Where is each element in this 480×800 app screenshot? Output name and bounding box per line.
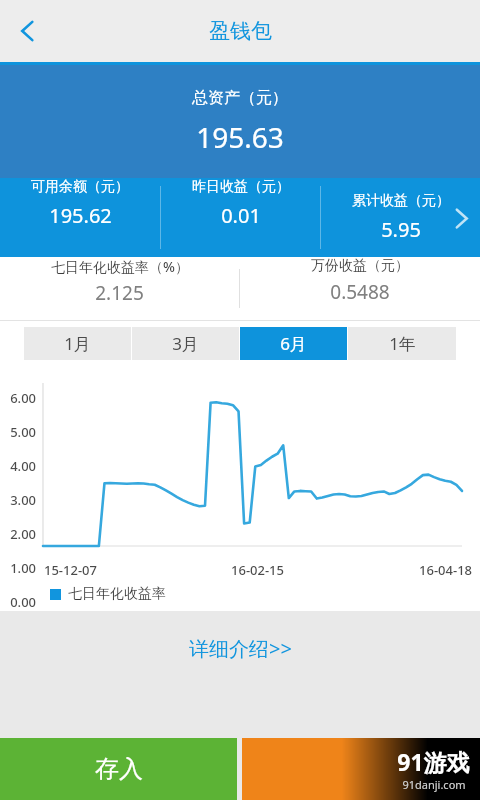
staticText: 可用余额（元） [31, 178, 129, 196]
staticText: 1.00 [0, 559, 36, 577]
button[interactable]: 6月 [240, 327, 347, 360]
staticText: 3.00 [0, 491, 36, 509]
button[interactable]: 可用余额（元） [0, 178, 480, 257]
staticText: 存入 [95, 754, 143, 784]
staticText: 16-02-15 [186, 561, 329, 579]
staticText: 详细介绍>> [189, 635, 292, 662]
staticText: 195.62 [49, 202, 112, 229]
button[interactable]: Back [0, 3, 56, 59]
staticText: 总资产（元） [192, 88, 288, 108]
staticText: 盈钱包 [209, 18, 272, 44]
staticText: 195.63 [196, 118, 284, 156]
button[interactable]: 3月 [132, 327, 239, 360]
staticText: 万份收益（元） [311, 257, 409, 275]
staticText: 2.125 [95, 280, 144, 306]
staticText: 七日年化收益率（%） [51, 257, 189, 276]
staticText: 5.00 [0, 423, 36, 441]
staticText: 16-04-18 [329, 561, 472, 579]
staticText: 七日年化收益率 [68, 585, 166, 603]
button[interactable]: 91游戏 [242, 738, 480, 800]
staticText: 0.5488 [330, 279, 390, 305]
staticText: 6月 [280, 332, 307, 355]
staticText: 15-12-07 [44, 561, 186, 579]
staticText: 91游戏 [397, 746, 470, 777]
staticText: 0.01 [221, 202, 261, 229]
staticText: 累计收益（元） [352, 192, 450, 210]
staticText: 0.00 [0, 593, 36, 611]
button[interactable]: 1月 [24, 327, 131, 360]
staticText: 2.00 [0, 525, 36, 543]
staticText: 1年 [389, 332, 416, 355]
staticText: 4.00 [0, 457, 36, 475]
button[interactable]: 详细介绍>> [175, 629, 306, 668]
button[interactable]: 存入 [0, 738, 237, 800]
staticText: 91danji.com [402, 777, 466, 792]
staticText: 3月 [172, 332, 199, 355]
staticText: 昨日收益（元） [192, 178, 290, 196]
staticText: 1月 [64, 332, 91, 355]
button[interactable]: 1年 [348, 327, 456, 360]
staticText: 5.95 [381, 216, 421, 243]
staticText: 6.00 [0, 389, 36, 407]
